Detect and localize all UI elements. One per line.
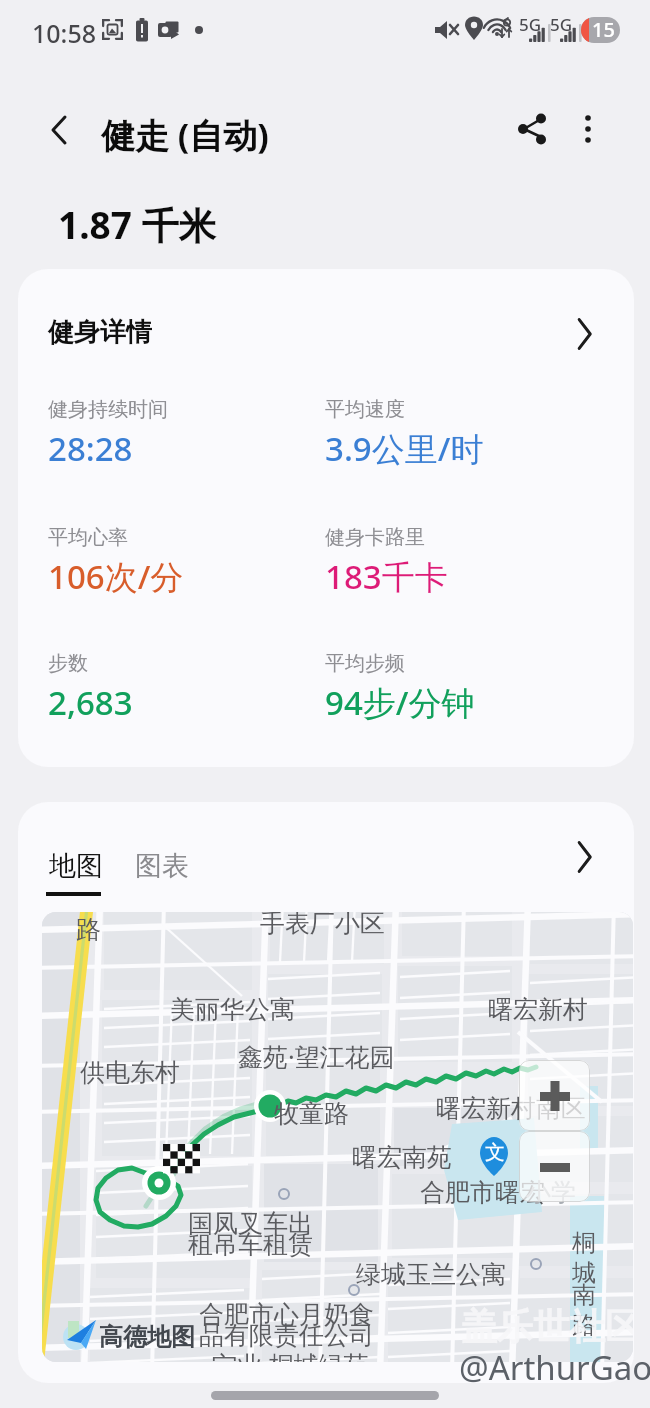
staticText: 高德地图 bbox=[99, 1322, 195, 1352]
button[interactable]: Zoom out bbox=[519, 1131, 590, 1202]
staticText: 品有限责任公司 bbox=[199, 1320, 374, 1351]
staticText: 曙宏新村 bbox=[488, 994, 588, 1025]
staticText: 健身详情 bbox=[48, 316, 152, 349]
staticText: 曙宏南苑 bbox=[352, 1142, 452, 1173]
staticText: @ArthurGao bbox=[459, 1345, 650, 1390]
button[interactable]: Back bbox=[36, 106, 84, 154]
button[interactable]: 健身详情 bbox=[18, 269, 634, 767]
staticText: 10:58 bbox=[32, 16, 97, 50]
staticText: 健身卡路里 bbox=[325, 525, 425, 550]
staticText: 步数 bbox=[48, 651, 88, 676]
button[interactable]: Fitness details bbox=[559, 309, 609, 359]
staticText: 美丽华公寓 bbox=[170, 994, 295, 1025]
staticText: 15 bbox=[592, 17, 615, 42]
staticText: 平均步频 bbox=[325, 651, 405, 676]
staticText: 国凤叉车出 bbox=[188, 1208, 313, 1239]
staticText: 28:28 bbox=[48, 426, 133, 471]
button[interactable]: Expand map bbox=[559, 832, 609, 882]
staticText: 牧童路 bbox=[274, 1098, 349, 1129]
staticText: 183千卡 bbox=[325, 554, 448, 599]
staticText: 1.87 千米 bbox=[58, 199, 216, 250]
button[interactable]: More options bbox=[564, 105, 612, 153]
staticText: 2,683 bbox=[48, 680, 133, 725]
staticText: 宁业·桐城绿苑 bbox=[212, 1347, 369, 1362]
staticText: 健走 (自动) bbox=[101, 112, 269, 158]
button[interactable]: 地图 bbox=[46, 849, 101, 896]
staticText: 绿城玉兰公寓 bbox=[356, 1259, 506, 1290]
staticText: 城 bbox=[572, 1258, 596, 1288]
staticText: 南 bbox=[572, 1280, 596, 1310]
staticText: 曙宏新村南区 bbox=[436, 1093, 586, 1124]
staticText: 94步/分钟 bbox=[325, 680, 475, 725]
button[interactable]: Zoom in bbox=[519, 1060, 590, 1131]
staticText: 106次/分 bbox=[48, 554, 184, 599]
staticText: 合肥市心月奶食 bbox=[199, 1299, 374, 1330]
staticText: 鑫苑·望江花园 bbox=[238, 1039, 395, 1073]
staticText: 盖乐世社区 bbox=[461, 1304, 633, 1349]
button[interactable]: Share bbox=[509, 105, 557, 153]
staticText: 文 bbox=[485, 1140, 505, 1165]
staticText: 5G bbox=[519, 13, 542, 36]
button[interactable]: 图表 bbox=[135, 849, 189, 883]
staticText: 地图 bbox=[49, 849, 103, 883]
staticText: 路 bbox=[572, 1310, 596, 1340]
staticText: 供电东村 bbox=[80, 1057, 180, 1088]
staticText: 合肥市曙宏 bbox=[420, 1177, 545, 1208]
staticText: 路 bbox=[76, 914, 101, 945]
staticText: 平均心率 bbox=[48, 525, 128, 550]
staticText: 平均速度 bbox=[325, 397, 405, 422]
staticText: 3.9公里/时 bbox=[325, 426, 484, 471]
staticText: 桐 bbox=[572, 1228, 596, 1258]
staticText: 5G bbox=[550, 13, 573, 36]
staticText: 租吊车租赁 bbox=[188, 1229, 313, 1260]
staticText: 手表厂小区 bbox=[260, 912, 385, 939]
staticText: 小学 bbox=[526, 1177, 576, 1208]
staticText: 健身持续时间 bbox=[48, 397, 168, 422]
